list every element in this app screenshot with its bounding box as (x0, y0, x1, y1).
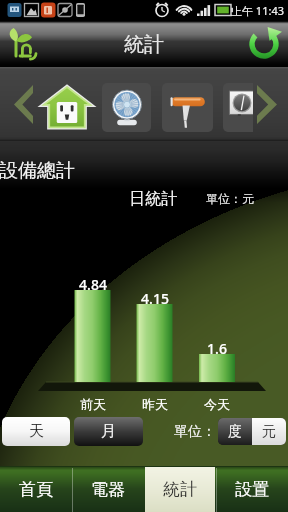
button[interactable]: 天 (2, 417, 70, 446)
button[interactable]: Next (252, 81, 282, 127)
other: Logo (4, 24, 44, 64)
staticText: 設置 (235, 479, 269, 500)
button[interactable]: 首頁 (0, 466, 72, 512)
button[interactable]: Washing machine (223, 83, 253, 132)
staticText: 單位： (174, 423, 216, 441)
staticText: 今天 (204, 396, 230, 412)
staticText: 設備總計 (0, 159, 75, 183)
button[interactable]: 統計 (144, 466, 216, 512)
staticText: 前天 (80, 396, 106, 412)
staticText: 統計 (163, 479, 197, 500)
button[interactable]: 月 (74, 417, 143, 446)
staticText: 天 (29, 422, 44, 441)
button[interactable]: 度 (218, 418, 252, 445)
staticText: 昨天 (142, 396, 168, 412)
button[interactable]: Fan (102, 83, 151, 132)
button[interactable]: 設置 (216, 466, 288, 512)
button[interactable]: Home socket (42, 82, 92, 132)
button[interactable]: 元 (252, 418, 286, 445)
staticText: 1.6 (207, 339, 227, 358)
staticText: 元 (262, 423, 276, 441)
staticText: 4.84 (79, 275, 107, 294)
button[interactable]: Hair dryer (162, 83, 213, 132)
staticText: 電器 (91, 479, 125, 500)
staticText: 單位：元 (206, 191, 254, 206)
staticText: 4.15 (141, 289, 169, 308)
button[interactable]: 電器 (72, 466, 144, 512)
staticText: 月 (101, 422, 116, 441)
button[interactable]: Refresh (244, 24, 284, 64)
staticText: 統計 (124, 32, 164, 57)
staticText: 首頁 (19, 479, 53, 500)
staticText: 上午 11:43 (231, 3, 284, 18)
button[interactable]: Previous (9, 81, 37, 127)
staticText: 度 (228, 423, 242, 441)
staticText: 日統計 (129, 189, 177, 209)
